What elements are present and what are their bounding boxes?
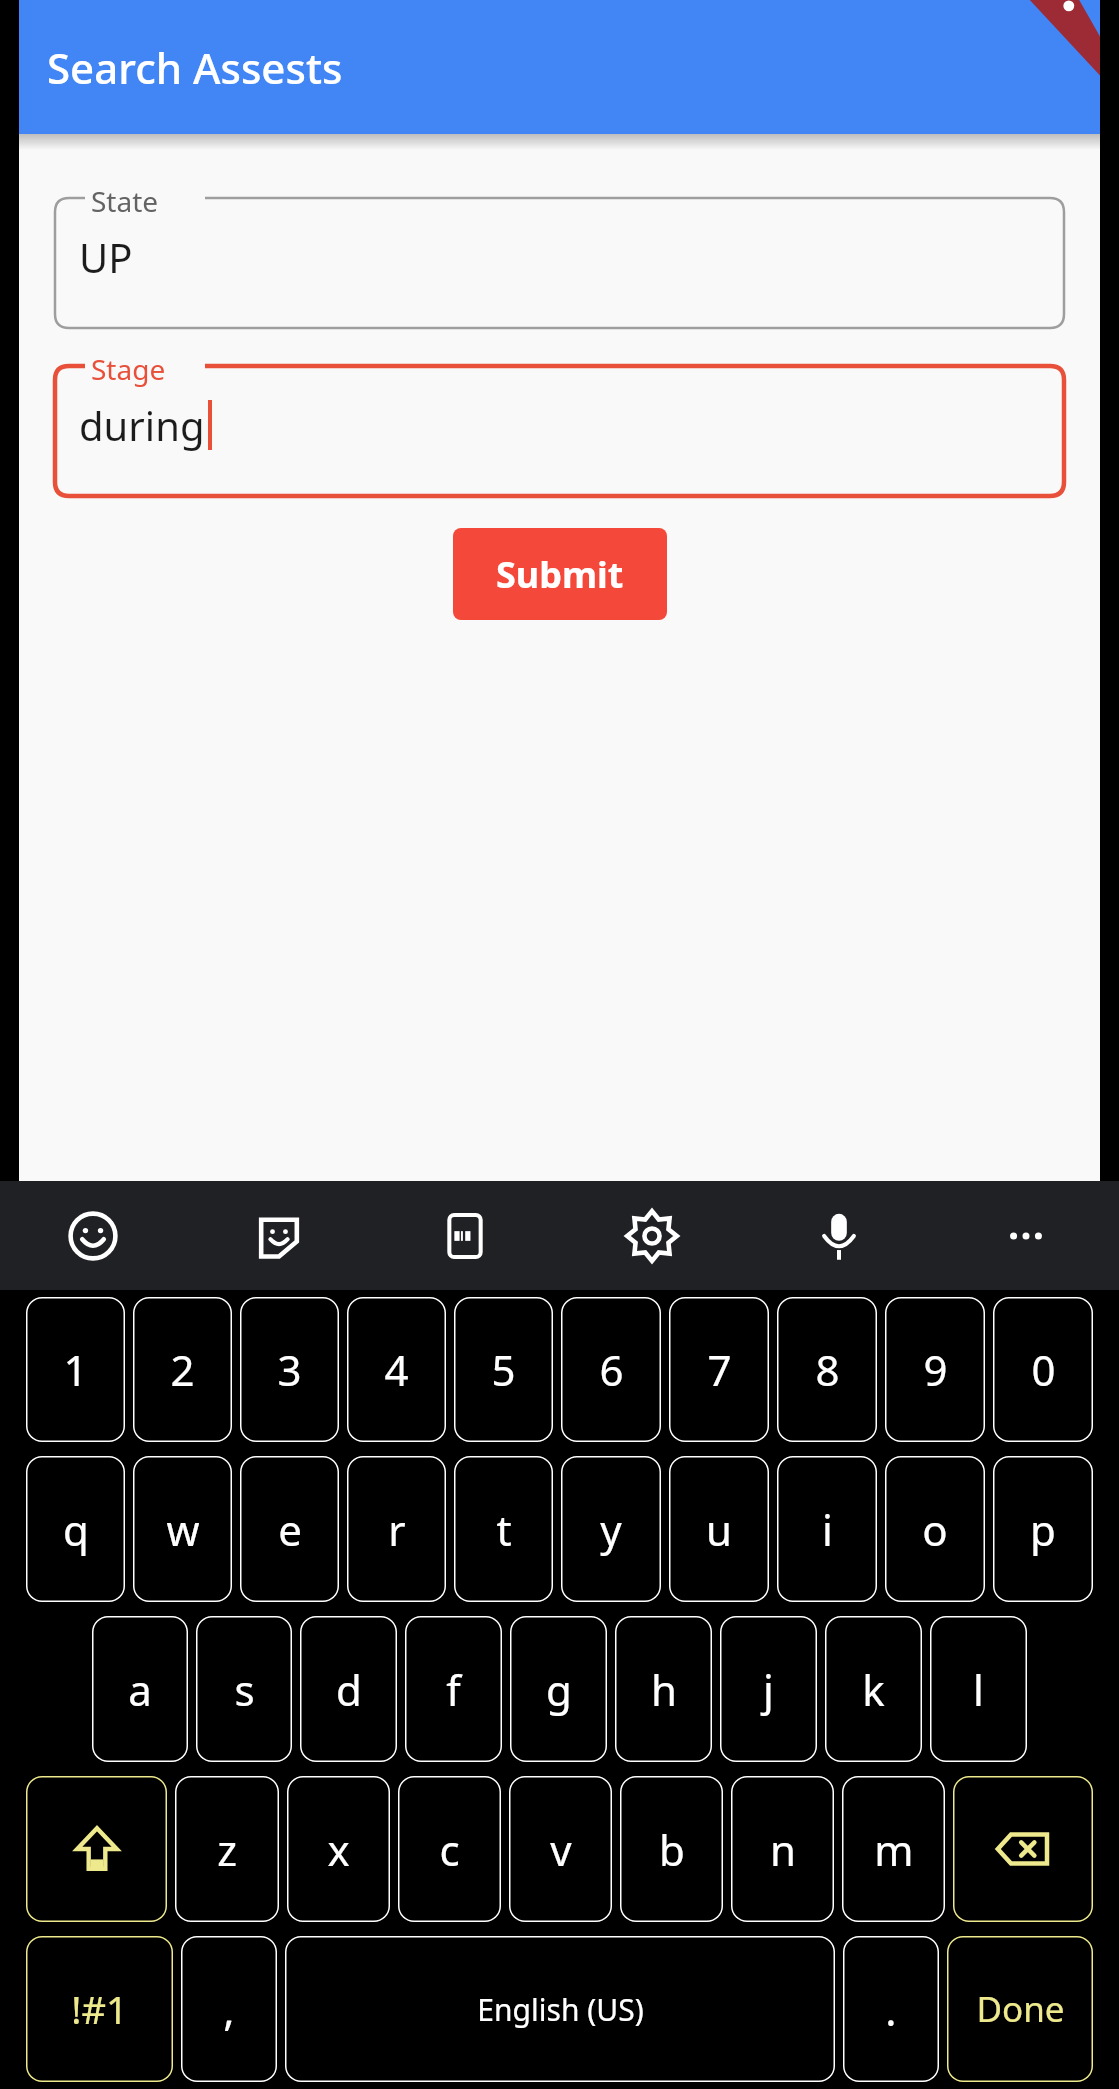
button[interactable]: GIF <box>372 1181 558 1290</box>
staticText: 6 <box>599 1341 624 1398</box>
button[interactable]: v <box>509 1776 612 1922</box>
staticText: Stage <box>91 350 166 388</box>
button[interactable]: c <box>398 1776 501 1922</box>
button[interactable]: State <box>55 198 1064 328</box>
staticText: d <box>336 1661 362 1718</box>
button[interactable]: x <box>287 1776 390 1922</box>
button[interactable]: 1 <box>26 1297 125 1442</box>
button[interactable]: d <box>300 1616 397 1762</box>
button[interactable]: b <box>620 1776 723 1922</box>
staticText: 7 <box>707 1341 732 1398</box>
staticText: Done <box>976 1985 1065 2033</box>
staticText: v <box>550 1821 572 1878</box>
staticText: a <box>128 1661 152 1718</box>
staticText: m <box>874 1821 914 1878</box>
staticText: h <box>651 1661 677 1718</box>
staticText: English (US) <box>477 1989 644 2030</box>
button[interactable]: 8 <box>777 1297 877 1442</box>
button[interactable]: u <box>669 1456 769 1602</box>
button[interactable]: , <box>181 1936 277 2082</box>
staticText: Submit <box>496 550 624 599</box>
button[interactable]: n <box>731 1776 834 1922</box>
button[interactable]: 7 <box>669 1297 769 1442</box>
staticText: p <box>1030 1501 1056 1558</box>
staticText: j <box>763 1661 774 1718</box>
button[interactable]: 0 <box>993 1297 1093 1442</box>
staticText: 1 <box>63 1341 88 1398</box>
button[interactable]: 2 <box>133 1297 232 1442</box>
button[interactable]: Submit <box>453 528 667 620</box>
staticText: e <box>278 1501 302 1558</box>
button[interactable]: 6 <box>561 1297 661 1442</box>
button[interactable]: Settings <box>558 1181 745 1290</box>
button[interactable]: 4 <box>347 1297 446 1442</box>
staticText: z <box>217 1821 237 1878</box>
button[interactable]: 5 <box>454 1297 553 1442</box>
button[interactable]: English (US) <box>285 1936 835 2082</box>
staticText: 8 <box>815 1341 840 1398</box>
button[interactable]: w <box>133 1456 232 1602</box>
staticText: !#1 <box>71 1983 128 2035</box>
staticText: . <box>885 1981 897 2038</box>
staticText: b <box>659 1821 685 1878</box>
button[interactable]: Backspace <box>953 1776 1093 1922</box>
staticText: UP <box>79 230 133 284</box>
button[interactable]: t <box>454 1456 553 1602</box>
button[interactable]: z <box>175 1776 279 1922</box>
button[interactable]: Stage <box>55 366 1064 496</box>
staticText: State <box>91 182 159 220</box>
button[interactable]: Emoji <box>0 1181 186 1290</box>
staticText: 9 <box>923 1341 948 1398</box>
button[interactable]: j <box>720 1616 817 1762</box>
staticText: c <box>439 1821 460 1878</box>
staticText: o <box>922 1501 948 1558</box>
staticText: t <box>496 1501 512 1558</box>
button[interactable]: f <box>405 1616 502 1762</box>
staticText: l <box>973 1661 984 1718</box>
button[interactable]: h <box>615 1616 712 1762</box>
staticText: 4 <box>384 1341 409 1398</box>
staticText: 2 <box>170 1341 195 1398</box>
staticText: u <box>706 1501 732 1558</box>
button[interactable]: Done <box>947 1936 1093 2082</box>
button[interactable]: e <box>240 1456 339 1602</box>
button[interactable]: r <box>347 1456 446 1602</box>
staticText: s <box>234 1661 255 1718</box>
button[interactable]: o <box>885 1456 985 1602</box>
button[interactable]: p <box>993 1456 1093 1602</box>
staticText: w <box>166 1501 200 1558</box>
staticText: Search Assests <box>47 39 343 96</box>
button[interactable]: y <box>561 1456 661 1602</box>
button[interactable]: l <box>930 1616 1027 1762</box>
staticText: x <box>327 1821 350 1878</box>
staticText: k <box>862 1661 885 1718</box>
button[interactable]: g <box>510 1616 607 1762</box>
staticText: y <box>600 1501 622 1558</box>
staticText: , <box>223 1981 235 2038</box>
staticText: during <box>79 398 205 452</box>
button[interactable]: Voice input <box>745 1181 932 1290</box>
staticText: g <box>546 1661 572 1718</box>
button[interactable]: Stickers <box>186 1181 372 1290</box>
button[interactable]: 9 <box>885 1297 985 1442</box>
staticText: 5 <box>491 1341 516 1398</box>
button[interactable]: More options <box>932 1181 1119 1290</box>
staticText: r <box>388 1501 406 1558</box>
button[interactable]: a <box>92 1616 188 1762</box>
button[interactable]: i <box>777 1456 877 1602</box>
button[interactable]: . <box>843 1936 939 2082</box>
staticText: q <box>63 1501 89 1558</box>
staticText: n <box>770 1821 796 1878</box>
button[interactable]: !#1 <box>26 1936 173 2082</box>
button[interactable]: q <box>26 1456 125 1602</box>
staticText: 3 <box>277 1341 302 1398</box>
button[interactable]: m <box>842 1776 945 1922</box>
staticText: i <box>822 1501 833 1558</box>
button[interactable]: 3 <box>240 1297 339 1442</box>
button[interactable]: Shift <box>26 1776 167 1922</box>
staticText: 0 <box>1031 1341 1056 1398</box>
staticText: f <box>446 1661 461 1718</box>
button[interactable]: s <box>196 1616 292 1762</box>
button[interactable]: k <box>825 1616 922 1762</box>
